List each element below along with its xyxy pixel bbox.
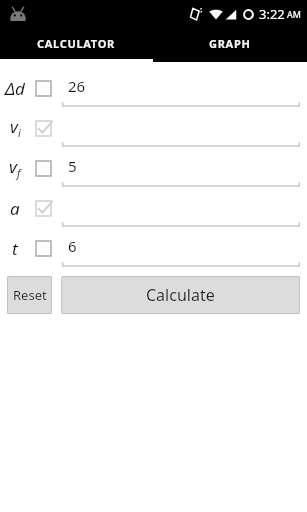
staticText: 6 — [68, 236, 77, 256]
staticText: Calculate — [146, 284, 215, 306]
staticText: GRAPH — [209, 36, 251, 51]
button[interactable]: Solve for t — [30, 235, 56, 261]
staticText: CALCULATOR — [37, 36, 116, 51]
button[interactable]: 5 — [62, 148, 300, 188]
staticText: 5 — [68, 156, 77, 176]
button[interactable]: Solve for Δd — [30, 75, 56, 101]
staticText: 26 — [68, 76, 86, 96]
staticText: Reset — [13, 286, 47, 304]
button[interactable]: 26 — [62, 68, 300, 108]
button[interactable]: Solve for v — [30, 115, 56, 141]
button[interactable]: GRAPH — [153, 28, 307, 59]
staticText: AM — [287, 8, 301, 20]
button[interactable] — [62, 188, 300, 228]
button[interactable]: Solve for a — [30, 195, 56, 221]
button[interactable]: Calculate — [61, 276, 300, 314]
staticText: Δd — [5, 77, 25, 100]
staticText: vf — [9, 155, 21, 181]
staticText: t — [12, 237, 18, 260]
staticText: a — [10, 197, 20, 220]
button[interactable]: CALCULATOR — [0, 28, 153, 59]
button[interactable]: 6 — [62, 228, 300, 268]
staticText: 3:22 — [259, 5, 285, 23]
button[interactable] — [62, 108, 300, 148]
staticText: vi — [10, 115, 21, 141]
button[interactable]: Reset — [7, 276, 52, 314]
button[interactable]: Solve for v — [30, 155, 56, 181]
